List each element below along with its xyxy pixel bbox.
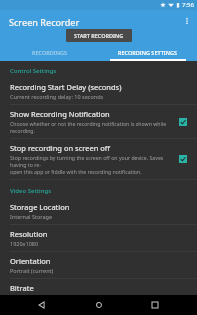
staticText: RECORDINGS [32, 49, 67, 56]
staticText: Storage Location [10, 202, 70, 212]
staticText: 1920x1080 [10, 240, 39, 247]
staticText: Stop recording on screen off [10, 143, 110, 153]
staticText: Internal Storage [10, 213, 53, 220]
staticText: Bitrate [10, 283, 34, 291]
staticText: Resolution [10, 229, 48, 239]
button[interactable]: RECORDINGS [0, 44, 98, 61]
button[interactable]: Recording Start Delay (seconds) [0, 78, 197, 104]
button[interactable]: Orientation [0, 252, 197, 278]
staticText: Show Recording Notification [10, 109, 110, 119]
button[interactable]: Recent apps [147, 297, 163, 313]
button[interactable]: More options [179, 13, 195, 29]
staticText: Control Settings [10, 67, 57, 75]
button[interactable]: Checked [177, 153, 189, 165]
button[interactable]: Show Recording Notification [0, 105, 197, 138]
staticText: Recording Start Delay (seconds) [10, 82, 122, 92]
staticText: open this app or fiddle with the recordi… [10, 168, 142, 175]
button[interactable]: Checked [177, 116, 189, 128]
button[interactable]: Back [34, 297, 50, 313]
staticText: Video Settings [10, 187, 52, 195]
staticText: Orientation [10, 256, 51, 266]
staticText: START RECORDING [74, 32, 124, 39]
staticText: RECORDING SETTINGS [118, 49, 177, 56]
button[interactable]: Storage Location [0, 198, 197, 224]
staticText: Choose whether or not the recording noti… [10, 120, 173, 134]
button[interactable]: Resolution [0, 225, 197, 251]
button[interactable]: Bitrate [0, 279, 197, 295]
button[interactable]: Stop recording on screen off [0, 139, 197, 179]
staticText: Stop recordings by turning the screen of… [10, 154, 173, 168]
staticText: Portrait (current) [10, 267, 54, 274]
staticText: Current recording delay: 10 seconds [10, 93, 104, 100]
staticText: Screen Recorder [9, 16, 80, 28]
button[interactable]: Home [91, 297, 107, 313]
button[interactable]: START RECORDING [66, 29, 132, 42]
button[interactable]: RECORDING SETTINGS [98, 44, 197, 61]
staticText: 7:56 [182, 1, 194, 9]
